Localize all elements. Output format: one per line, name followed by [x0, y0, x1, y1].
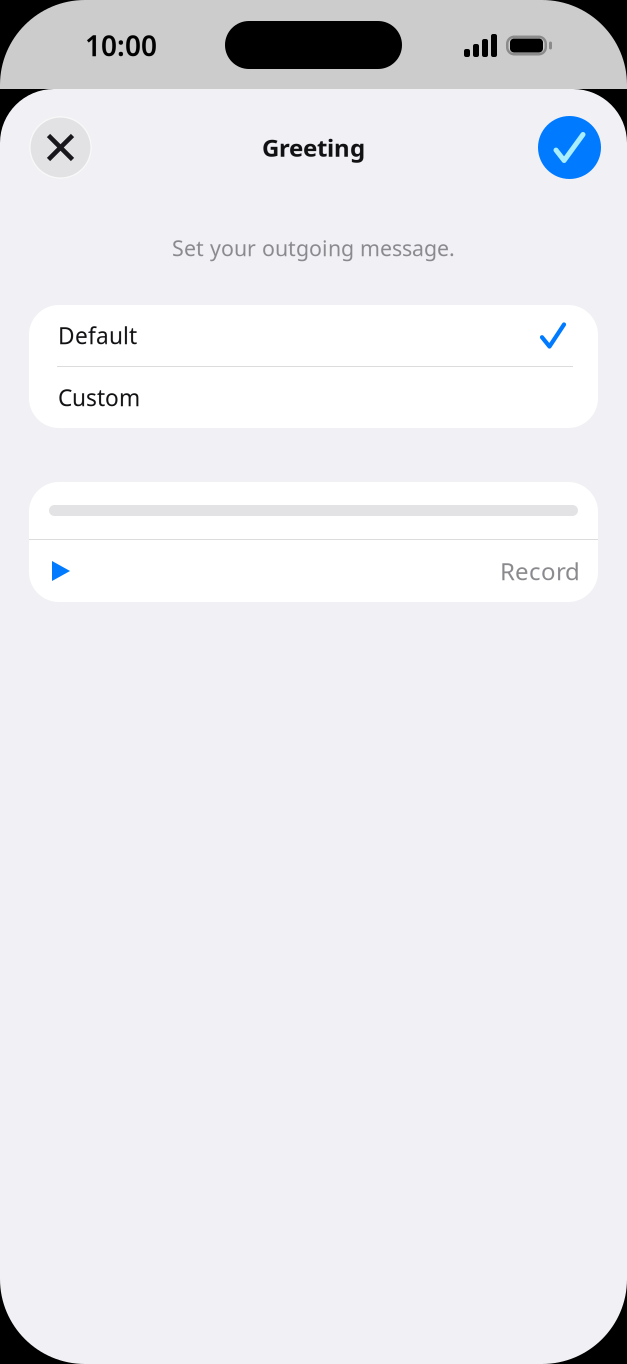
staticText: Greeting — [262, 132, 365, 163]
staticText: Record — [500, 555, 580, 587]
staticText: Custom — [58, 382, 140, 412]
staticText: Set your outgoing message. — [172, 234, 455, 262]
staticText: Default — [58, 320, 137, 350]
button[interactable]: Close — [29, 116, 92, 179]
staticText: 10:00 — [85, 27, 157, 64]
button[interactable]: Done — [538, 116, 601, 179]
button[interactable]: Default — [29, 305, 598, 366]
button[interactable]: Custom — [29, 367, 598, 428]
button[interactable]: Record — [500, 535, 598, 607]
button[interactable]: Play — [29, 540, 88, 602]
